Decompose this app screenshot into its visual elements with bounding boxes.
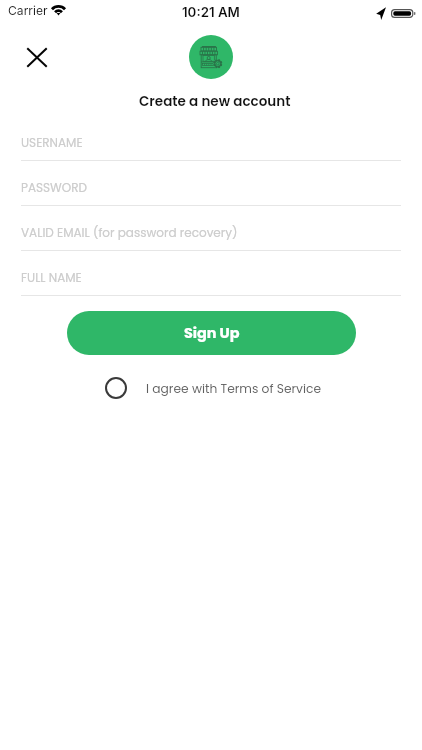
staticText: Create a new account	[139, 92, 291, 111]
staticText: Sign Up	[184, 323, 240, 343]
staticText: USERNAME	[21, 134, 83, 151]
button[interactable]: I agree with Terms of Service	[105, 377, 321, 399]
button[interactable]: Close	[15, 35, 59, 79]
staticText: I agree with Terms of Service	[146, 380, 321, 397]
staticText: FULL NAME	[21, 269, 82, 286]
staticText: PASSWORD	[21, 179, 88, 196]
button[interactable]: VALID EMAIL (for password recovery)	[21, 218, 401, 250]
other: Wi-Fi	[51, 5, 66, 16]
staticText: 10:21 AM	[182, 4, 240, 20]
button[interactable]: Sign Up	[67, 311, 356, 355]
staticText: Carrier	[8, 3, 48, 18]
button[interactable]: PASSWORD	[21, 173, 401, 205]
staticText: VALID EMAIL (for password recovery)	[21, 224, 238, 241]
button[interactable]: FULL NAME	[21, 263, 401, 295]
button[interactable]: USERNAME	[21, 128, 401, 160]
